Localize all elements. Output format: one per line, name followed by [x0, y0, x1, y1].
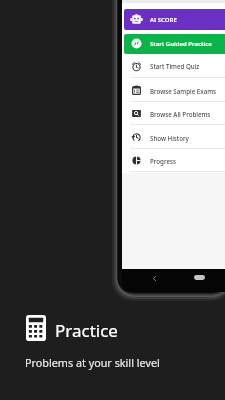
button[interactable]: Start Guided Practice — [124, 34, 225, 54]
staticText: AI SCORE — [150, 16, 177, 24]
staticText: Progress — [150, 157, 176, 165]
button[interactable]: Home — [194, 275, 205, 280]
staticText: Browse All Problems — [150, 110, 211, 118]
staticText: Practice — [55, 319, 118, 342]
button[interactable]: Start Timed Quiz — [122, 53, 225, 77]
staticText: Browse Sample Exams — [150, 87, 217, 95]
staticText: Problems at your skill level — [25, 355, 160, 370]
staticText: Start Timed Quiz — [150, 62, 200, 70]
button[interactable]: Browse All Problems — [122, 101, 225, 125]
staticText: Show History — [150, 134, 189, 142]
button[interactable]: Progress — [122, 148, 225, 172]
button[interactable]: AI SCORE — [124, 9, 225, 30]
button[interactable]: Back — [148, 272, 160, 284]
button[interactable]: Browse Sample Exams — [122, 78, 225, 101]
staticText: Start Guided Practice — [150, 40, 212, 48]
button[interactable]: Show History — [122, 125, 225, 148]
